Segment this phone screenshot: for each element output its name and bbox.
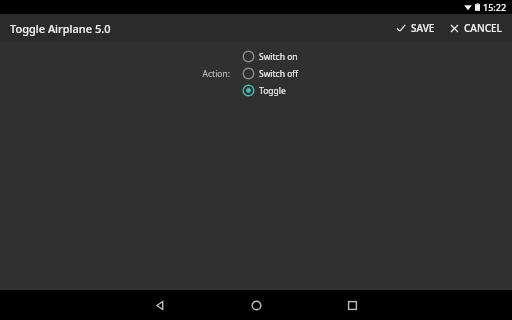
button[interactable]: Toggle	[240, 82, 288, 99]
staticText: SAVE	[411, 21, 435, 35]
staticText: Toggle	[259, 85, 286, 97]
button[interactable]: Home	[208, 290, 304, 320]
button[interactable]: Back	[112, 290, 208, 320]
staticText: Switch off	[259, 68, 299, 80]
button[interactable]: Recent apps	[304, 290, 400, 320]
staticText: Toggle Airplane 5.0	[10, 21, 111, 36]
button[interactable]: CANCEL	[445, 17, 506, 39]
staticText: 15:22	[483, 1, 507, 13]
button[interactable]: SAVE	[391, 17, 439, 39]
staticText: Switch on	[259, 51, 298, 63]
staticText: Action:	[202, 68, 230, 80]
button[interactable]: Switch off	[240, 65, 301, 82]
staticText: CANCEL	[464, 21, 502, 35]
button[interactable]: Switch on	[240, 48, 300, 65]
